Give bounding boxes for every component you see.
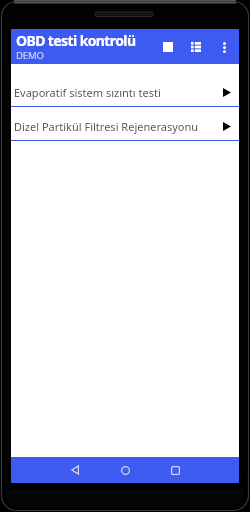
button[interactable]: Recents <box>150 457 200 483</box>
staticText: DEMO <box>16 49 44 62</box>
button[interactable]: More options <box>210 32 238 62</box>
button[interactable]: Evaporatif sistem sızıntı testi <box>11 73 239 107</box>
button[interactable]: Home <box>100 457 150 483</box>
button[interactable]: Back <box>50 457 100 483</box>
staticText: Dizel Partikül Filtresi Rejenerasyonu <box>14 119 223 134</box>
staticText: OBD testi kontrolü <box>16 31 136 50</box>
button[interactable]: Stop <box>154 32 182 62</box>
button[interactable]: List <box>182 32 210 62</box>
staticText: Evaporatif sistem sızıntı testi <box>14 85 223 100</box>
button[interactable]: Dizel Partikül Filtresi Rejenerasyonu <box>11 107 239 141</box>
